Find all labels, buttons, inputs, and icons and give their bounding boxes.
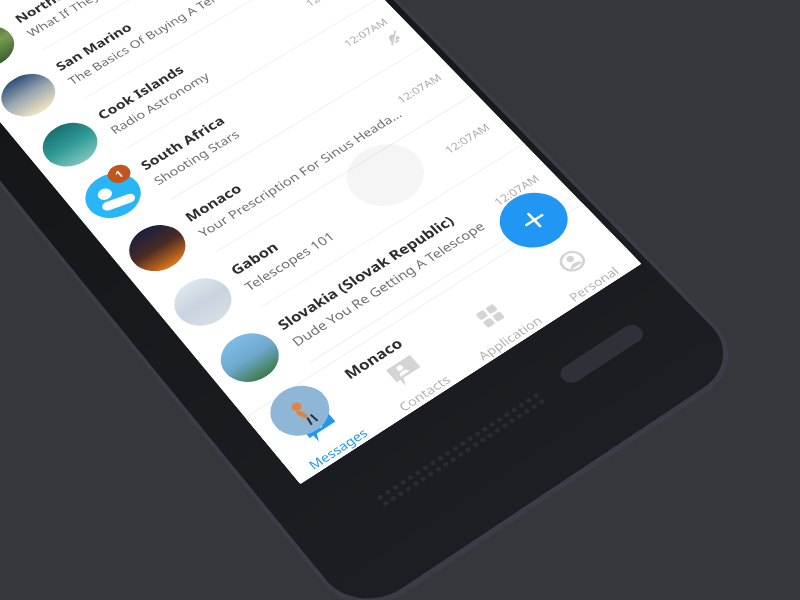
button[interactable]: New message bbox=[486, 182, 581, 259]
button[interactable]: Personal bbox=[501, 204, 642, 317]
staticText: 12:07AM bbox=[490, 171, 543, 209]
button[interactable]: Monaco bbox=[238, 195, 626, 467]
staticText: Your Prescription For Sinus Headache… bbox=[195, 106, 405, 240]
staticText: Application bbox=[474, 312, 546, 364]
button[interactable]: Application bbox=[417, 256, 558, 372]
staticText: Messages bbox=[305, 424, 372, 473]
staticText: Monaco bbox=[181, 179, 245, 225]
staticText: Slovakia (Slovak Republic) bbox=[273, 211, 458, 333]
button[interactable]: 1 bbox=[57, 0, 428, 242]
staticText: Contacts bbox=[395, 371, 454, 415]
staticText: 1 bbox=[111, 167, 127, 181]
staticText: Shooting Stars bbox=[150, 127, 243, 188]
button[interactable]: Northern Mariana Islands bbox=[0, 0, 293, 90]
button[interactable]: Contacts bbox=[332, 309, 474, 428]
staticText: Telescopes 101 bbox=[241, 228, 339, 294]
staticText: Dude You Re Getting A Telescope bbox=[288, 218, 488, 349]
staticText: 12:07AM bbox=[340, 15, 391, 50]
staticText: Cook Islands bbox=[93, 61, 187, 123]
staticText: The Basics Of Buying A Telescope bbox=[65, 0, 256, 88]
staticText: South Africa bbox=[136, 112, 228, 173]
staticText: Gabon bbox=[226, 237, 282, 278]
button[interactable]: Cook Islands bbox=[14, 0, 381, 190]
staticText: 12:07AM bbox=[394, 70, 445, 106]
button[interactable]: Messages bbox=[245, 363, 387, 484]
staticText: 12:07AM bbox=[441, 120, 493, 157]
staticText: Monaco bbox=[339, 333, 407, 382]
staticText: Monaco bbox=[321, 340, 389, 390]
button[interactable]: San Marino bbox=[0, 0, 336, 139]
staticText: Radio Astronomy bbox=[107, 69, 212, 137]
button[interactable]: Monaco bbox=[100, 44, 475, 296]
staticText: Personal bbox=[565, 263, 623, 305]
staticText: San Marino bbox=[52, 19, 135, 74]
staticText: 12:07AM bbox=[541, 224, 594, 262]
staticText: 12:07AM bbox=[302, 0, 353, 9]
button[interactable]: Gabon bbox=[144, 93, 524, 351]
staticText: Northern Mariana Islands bbox=[11, 0, 185, 26]
staticText: Where Does Space Begin? bbox=[337, 297, 499, 407]
staticText: What If They Beat Us To It? bbox=[24, 0, 178, 40]
button[interactable]: Slovakia (Slovak Republic) bbox=[190, 143, 574, 408]
